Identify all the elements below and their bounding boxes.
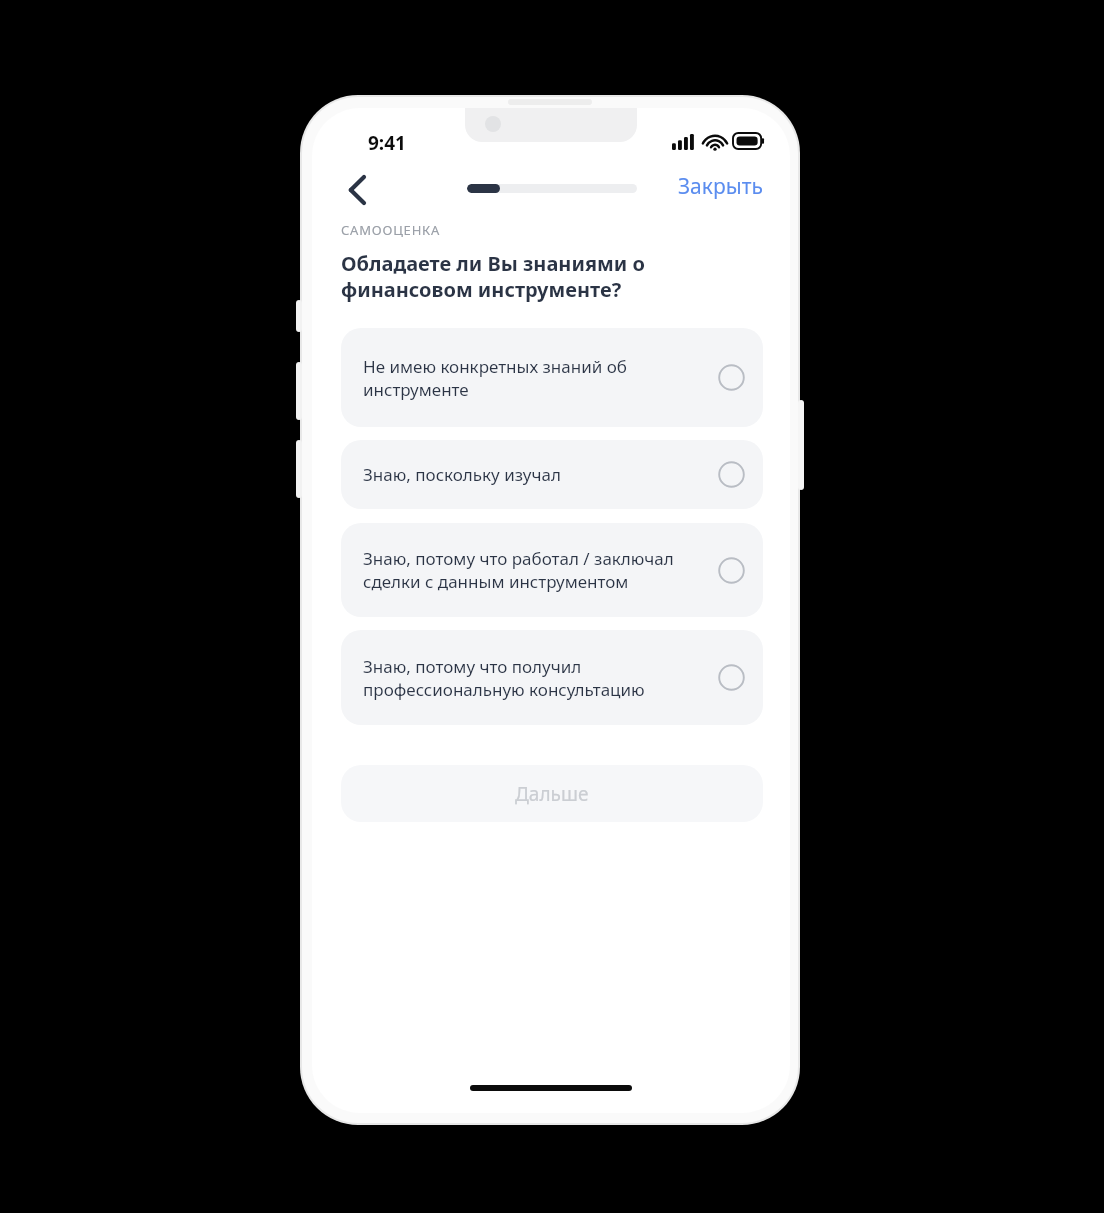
staticText: Дальше bbox=[515, 781, 589, 807]
staticText: Закрыть bbox=[678, 172, 763, 201]
button[interactable]: Закрыть bbox=[674, 166, 767, 207]
staticText: Обладаете ли Вы знаниями о финансовом ин… bbox=[341, 250, 751, 303]
button[interactable]: Дальше bbox=[341, 765, 763, 822]
button[interactable]: Назад bbox=[330, 164, 382, 216]
staticText: Знаю, потому что получил профессиональну… bbox=[363, 655, 704, 701]
button[interactable]: Знаю, поскольку изучал bbox=[341, 440, 763, 509]
staticText: Не имею конкретных знаний об инструменте bbox=[363, 355, 704, 401]
staticText: Знаю, поскольку изучал bbox=[363, 463, 704, 486]
button[interactable]: Не имею конкретных знаний об инструменте bbox=[341, 328, 763, 427]
staticText: Знаю, потому что работал / заключал сдел… bbox=[363, 547, 704, 593]
staticText: САМООЦЕНКА bbox=[341, 221, 441, 239]
button[interactable]: Знаю, потому что получил профессиональну… bbox=[341, 630, 763, 725]
staticText: 9:41 bbox=[368, 130, 406, 156]
button[interactable]: Знаю, потому что работал / заключал сдел… bbox=[341, 523, 763, 617]
